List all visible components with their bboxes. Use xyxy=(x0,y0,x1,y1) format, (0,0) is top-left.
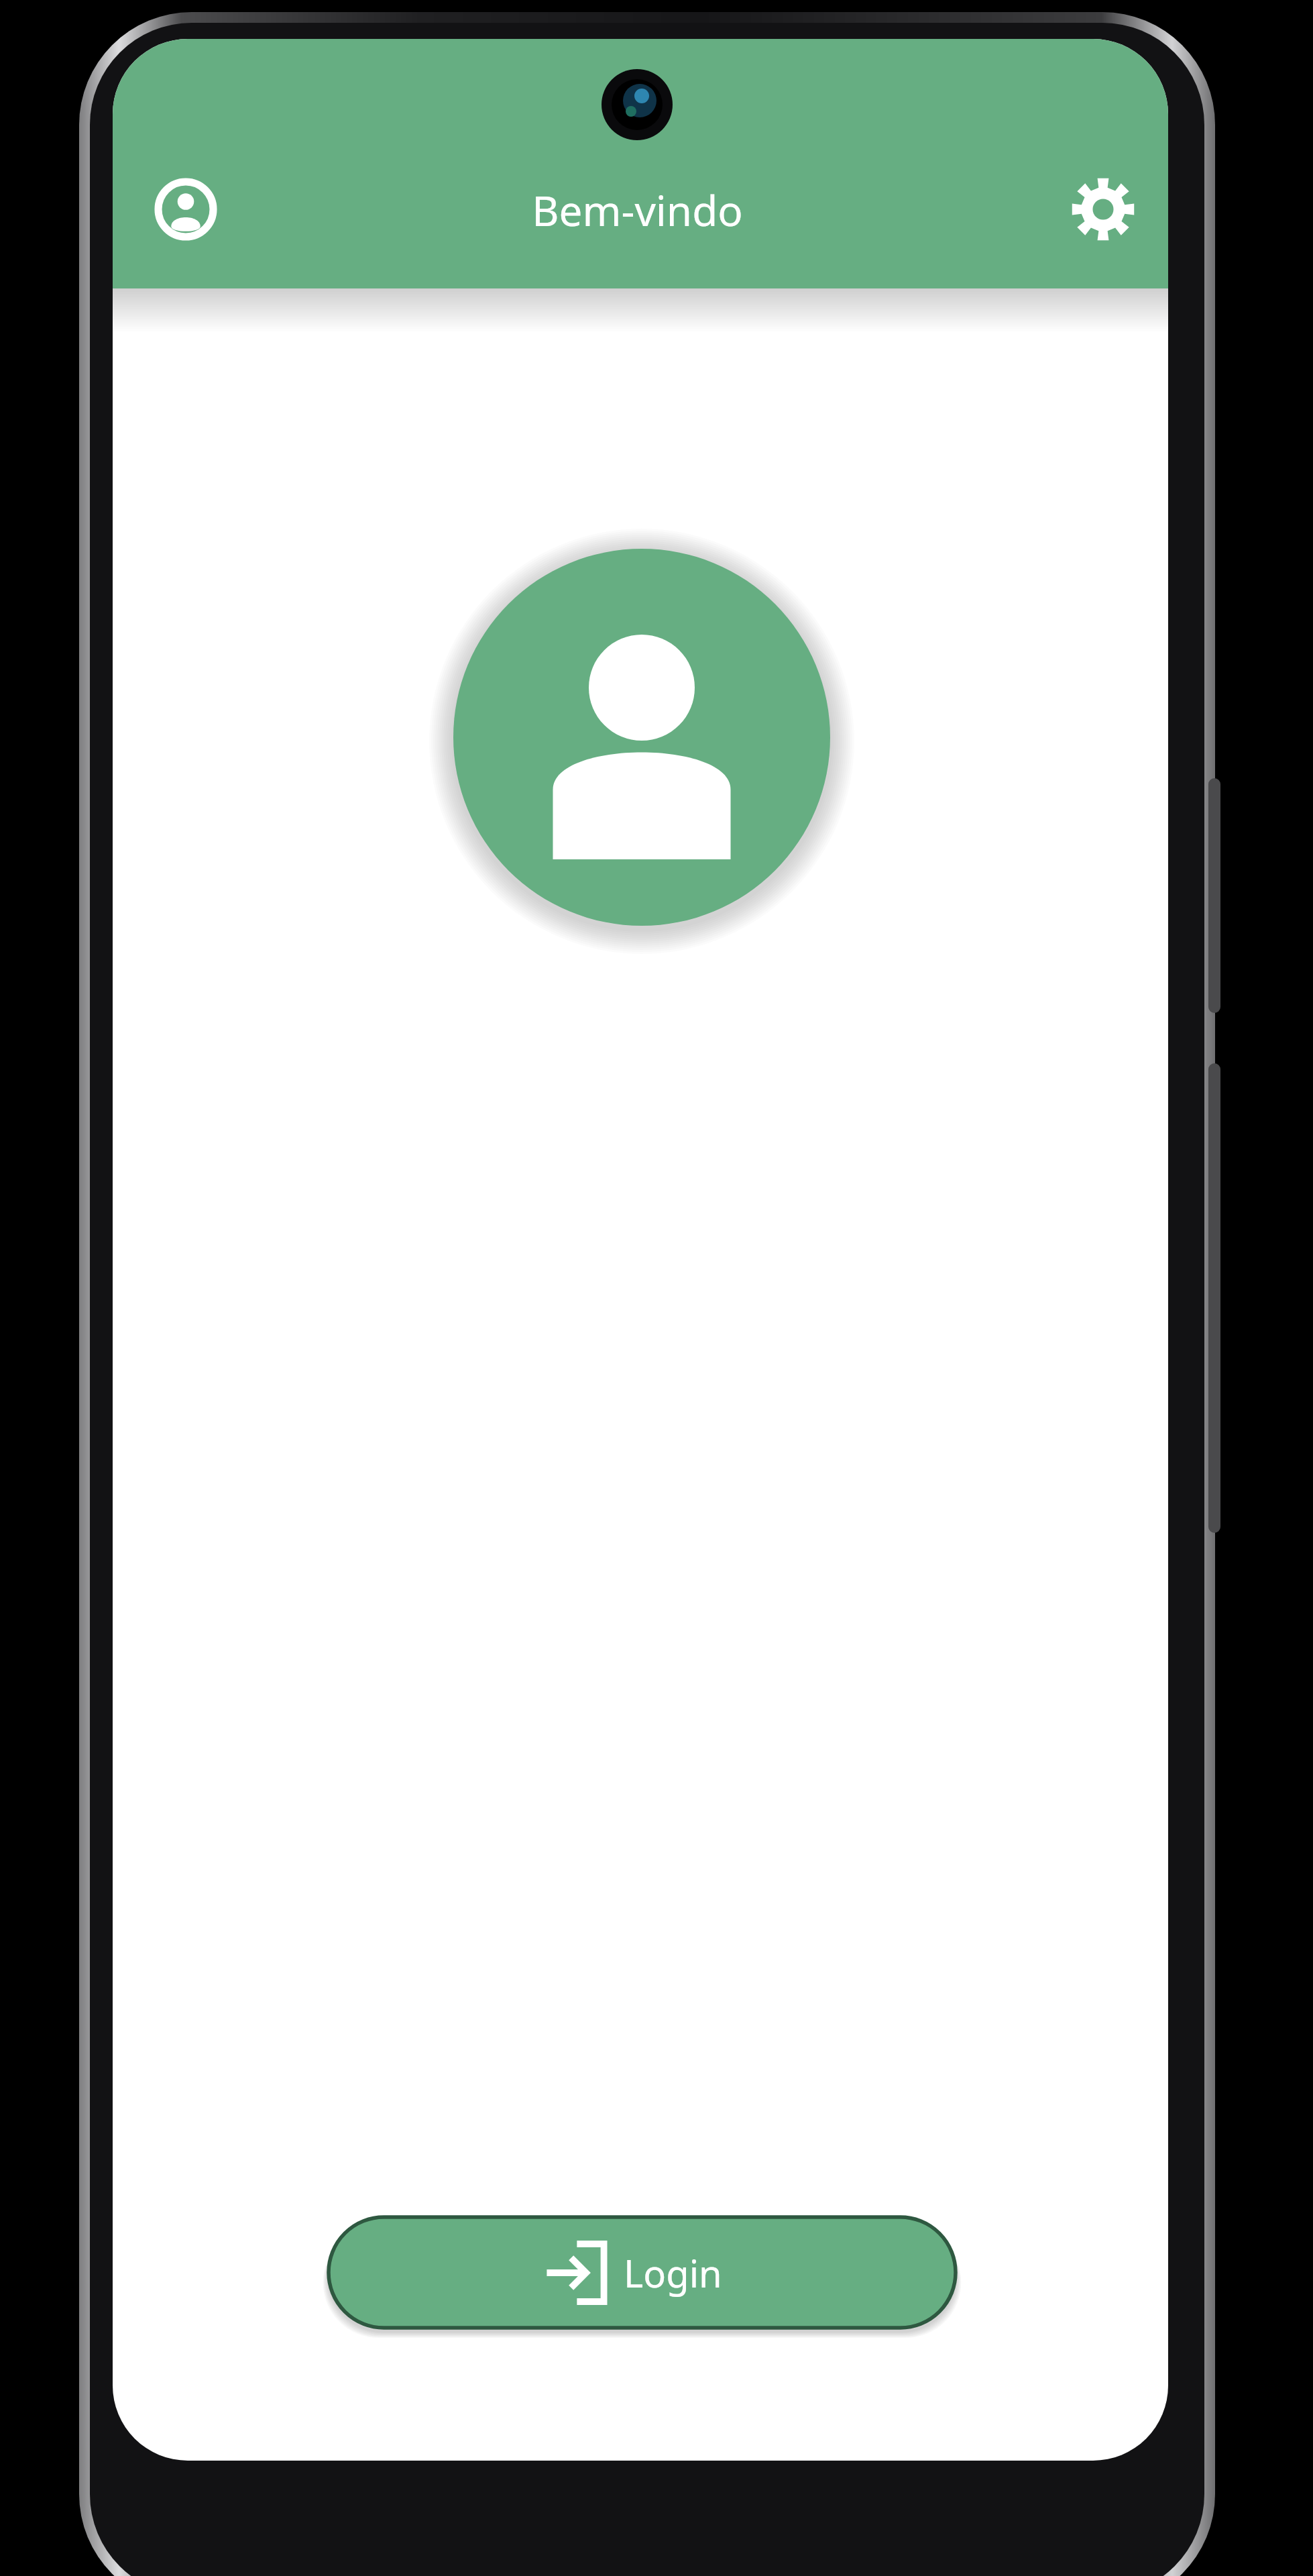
button[interactable]: Account xyxy=(149,172,223,246)
staticText: Login xyxy=(624,2247,722,2298)
button[interactable]: Settings xyxy=(1066,172,1140,246)
button[interactable] xyxy=(329,2217,956,2328)
staticText: Bem-vindo xyxy=(532,182,743,238)
